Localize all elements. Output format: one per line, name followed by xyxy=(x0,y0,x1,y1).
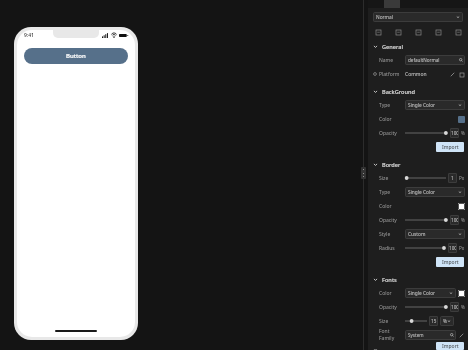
button[interactable]: Single Color xyxy=(405,288,456,298)
staticText: Platform xyxy=(379,71,405,78)
staticText: Opacity xyxy=(379,217,405,224)
staticText: Import xyxy=(442,343,459,350)
staticText: Name xyxy=(379,57,405,64)
staticText: % xyxy=(461,130,465,136)
staticText: Common xyxy=(405,71,427,78)
staticText: Import xyxy=(442,144,459,151)
button[interactable]: 100 xyxy=(450,302,459,312)
staticText: Border xyxy=(382,161,401,169)
staticText: Color xyxy=(379,116,405,123)
button[interactable]: Pick color xyxy=(458,116,465,123)
button[interactable]: Import xyxy=(436,342,464,350)
button[interactable]: Single Color xyxy=(405,100,465,110)
button[interactable]: 1 xyxy=(448,173,457,183)
staticText: Radius xyxy=(379,245,405,252)
button[interactable]: System xyxy=(405,330,456,340)
button[interactable]: Pick color xyxy=(458,203,465,210)
staticText: % xyxy=(461,304,465,310)
staticText: Px xyxy=(459,175,465,181)
button[interactable]: BackGround xyxy=(368,85,468,98)
staticText: 9:41 xyxy=(24,32,34,39)
staticText: Font Family xyxy=(379,328,405,342)
staticText: Style xyxy=(379,231,405,238)
button[interactable]: Import xyxy=(436,257,464,267)
staticText: Normal xyxy=(376,14,393,21)
staticText: Custom xyxy=(408,231,426,238)
button[interactable]: Custom xyxy=(405,229,465,239)
staticText: Size xyxy=(379,318,405,325)
staticText: General xyxy=(382,43,403,51)
button[interactable]: Normal xyxy=(373,12,463,22)
staticText: Single Color xyxy=(408,102,436,109)
staticText: 15 xyxy=(431,318,437,324)
staticText: Size xyxy=(379,175,405,182)
button[interactable]: Align xyxy=(434,28,442,36)
staticText: Import xyxy=(442,259,459,266)
button[interactable]: Pick color xyxy=(458,290,465,297)
staticText: % xyxy=(461,217,465,223)
button[interactable]: 100 xyxy=(450,215,459,225)
staticText: Color xyxy=(379,290,405,297)
button[interactable]: Border xyxy=(368,158,468,171)
button[interactable]: 100 xyxy=(450,128,459,138)
button[interactable]: Edit xyxy=(449,71,456,78)
staticText: System xyxy=(408,332,424,338)
staticText: 100 xyxy=(451,217,459,223)
button[interactable]: Import xyxy=(436,142,464,152)
staticText: Single Color xyxy=(408,189,436,196)
staticText: 100 xyxy=(449,245,457,251)
button[interactable]: Effects xyxy=(374,28,382,36)
staticText: Button xyxy=(66,52,86,60)
button[interactable]: Duplicate xyxy=(454,28,462,36)
button[interactable]: Fonts xyxy=(368,273,468,286)
staticText: 100 xyxy=(451,304,459,310)
staticText: 100 xyxy=(451,130,459,136)
staticText: Opacity xyxy=(379,304,405,311)
staticText: Color xyxy=(379,203,405,210)
button[interactable]: Edit font xyxy=(458,332,465,339)
button[interactable]: Paste xyxy=(414,28,422,36)
staticText: Px xyxy=(459,245,465,251)
button[interactable]: Button xyxy=(24,48,128,64)
button[interactable]: Single Color xyxy=(405,187,465,197)
staticText: 1 xyxy=(451,175,454,181)
staticText: defaultNormal xyxy=(408,57,440,63)
staticText: Type xyxy=(379,102,405,109)
button[interactable]: 15 xyxy=(429,316,438,326)
staticText: Fonts xyxy=(382,276,397,284)
staticText: Opacity xyxy=(379,130,405,137)
button[interactable]: Copy xyxy=(394,28,402,36)
staticText: Type xyxy=(379,189,405,196)
button[interactable]: Reset xyxy=(458,71,465,78)
button[interactable]: 100 xyxy=(448,243,457,253)
button[interactable]: % xyxy=(440,316,454,326)
button[interactable]: defaultNormal xyxy=(405,55,465,65)
staticText: % xyxy=(443,318,447,325)
staticText: Single Color xyxy=(408,290,436,297)
button[interactable]: General xyxy=(368,40,468,53)
staticText: BackGround xyxy=(382,88,415,96)
